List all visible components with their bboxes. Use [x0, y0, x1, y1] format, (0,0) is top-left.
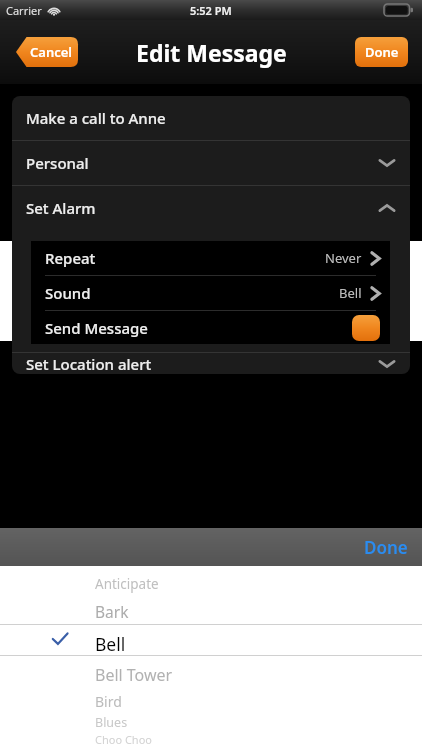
staticText: Never — [325, 249, 362, 267]
button[interactable]: Send Message toggle — [352, 315, 380, 341]
staticText: Choo Choo — [95, 732, 152, 747]
button[interactable]: Cancel — [16, 37, 78, 67]
staticText: Send Message — [45, 318, 148, 338]
staticText: Bell — [95, 632, 126, 656]
button[interactable]: Set Location alert — [12, 353, 410, 374]
staticText: Set Alarm — [26, 198, 96, 218]
staticText: 5:52 PM — [190, 3, 232, 18]
button[interactable]: Bark — [95, 601, 129, 622]
staticText: Personal — [26, 153, 89, 173]
button[interactable]: Blues — [95, 714, 128, 731]
staticText: Edit Message — [136, 37, 287, 68]
button[interactable]: Make a call to Anne — [12, 96, 410, 140]
button[interactable]: Repeat — [31, 241, 390, 275]
button[interactable]: Done — [364, 536, 408, 559]
staticText: Bark — [95, 601, 129, 622]
staticText: Set Location alert — [26, 354, 152, 374]
button[interactable]: Bird — [95, 692, 122, 711]
staticText: Carrier — [6, 3, 42, 18]
staticText: Anticipate — [95, 575, 159, 593]
button[interactable]: Sound — [31, 276, 390, 310]
staticText: Make a call to Anne — [26, 108, 166, 128]
button[interactable]: Bell Tower — [95, 664, 173, 686]
button[interactable]: Anticipate — [95, 575, 159, 593]
staticText: Bell — [339, 284, 362, 302]
staticText: Bird — [95, 692, 122, 711]
button[interactable]: Send Message — [31, 311, 390, 344]
staticText: Bell Tower — [95, 664, 173, 686]
staticText: Cancel — [30, 43, 73, 61]
staticText: Blues — [95, 714, 128, 731]
staticText: Repeat — [45, 248, 96, 268]
staticText: Done — [364, 536, 408, 559]
button[interactable]: Personal — [12, 141, 410, 185]
button[interactable]: Bell — [95, 632, 126, 656]
button[interactable]: Done — [355, 37, 408, 67]
button[interactable]: Set Alarm — [12, 186, 410, 230]
staticText: Sound — [45, 283, 91, 303]
button[interactable]: Choo Choo — [95, 732, 152, 747]
staticText: Done — [365, 43, 399, 61]
